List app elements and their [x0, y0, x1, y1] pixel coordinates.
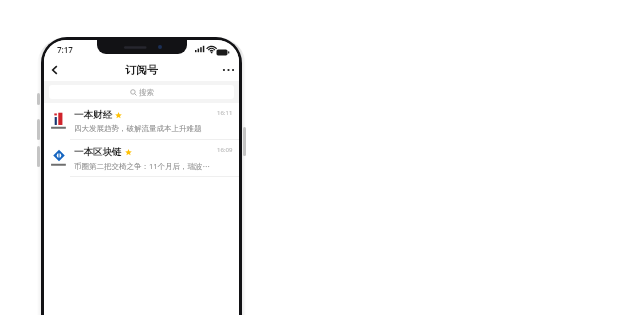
button[interactable]: 一本财经: [44, 103, 239, 139]
button[interactable]: 搜索: [49, 85, 234, 99]
button[interactable]: 一本区块链: [44, 140, 239, 176]
staticText: 16:09: [217, 146, 233, 154]
button[interactable]: More options: [217, 59, 239, 81]
staticText: 16:11: [217, 109, 233, 117]
staticText: 四大发展趋势，破解流量成本上升难题: [74, 124, 202, 133]
staticText: 币圈第二把交椅之争：11个月后，瑞波币再...: [74, 161, 213, 171]
staticText: 一本区块链: [74, 146, 122, 158]
staticText: 订阅号: [125, 63, 158, 77]
staticText: 一本财经: [74, 109, 112, 121]
staticText: 搜索: [139, 88, 154, 97]
button[interactable]: Back: [44, 59, 66, 81]
staticText: 7:17: [57, 44, 73, 55]
